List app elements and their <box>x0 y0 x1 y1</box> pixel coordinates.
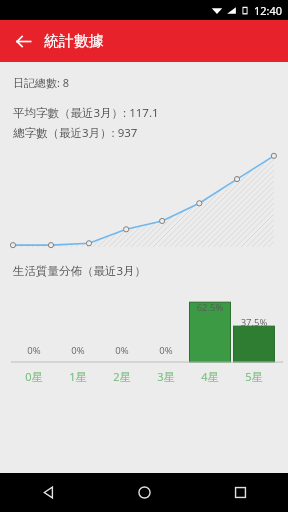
staticText: 生活質量分佈（最近3月） <box>13 263 147 279</box>
staticText: 統計數據 <box>44 32 104 51</box>
button[interactable]: Home <box>96 473 192 512</box>
staticText: 2星 <box>113 369 131 384</box>
staticText: 0星 <box>25 369 43 384</box>
staticText: 1星 <box>69 369 87 384</box>
staticText: 日記總數: 8 <box>13 75 70 90</box>
button[interactable]: 1星 <box>56 369 100 384</box>
button[interactable]: Back <box>0 473 96 512</box>
staticText: 3星 <box>157 369 175 384</box>
button[interactable]: 2星 <box>100 369 144 384</box>
staticText: 4星 <box>201 369 219 384</box>
staticText: 0% <box>144 344 188 357</box>
staticText: 總字數（最近3月）: 937 <box>13 125 138 141</box>
staticText: 37.5% <box>232 316 276 329</box>
button[interactable]: 5星 <box>232 369 276 384</box>
staticText: 0% <box>12 344 56 357</box>
button[interactable]: 4星 <box>188 369 232 384</box>
button[interactable]: 0星 <box>12 369 56 384</box>
button[interactable]: 3星 <box>144 369 188 384</box>
staticText: 5星 <box>245 369 263 384</box>
staticText: 平均字數（最近3月）: 117.1 <box>13 105 159 121</box>
button[interactable]: Back <box>8 26 38 56</box>
staticText: 12:40 <box>254 3 283 18</box>
staticText: 62.5% <box>188 301 232 314</box>
staticText: 0% <box>56 344 100 357</box>
button[interactable]: Recent apps <box>192 473 288 512</box>
staticText: 0% <box>100 344 144 357</box>
